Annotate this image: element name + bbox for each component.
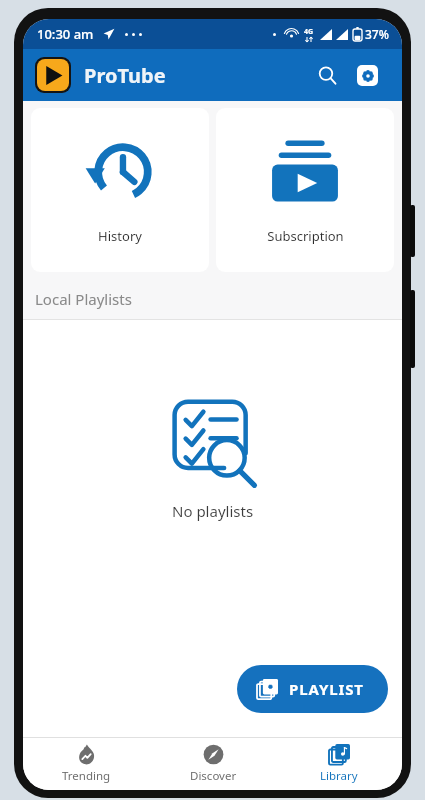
staticText: Discover: [190, 768, 237, 784]
button[interactable]: Library: [276, 738, 402, 790]
staticText: 4G: [304, 27, 314, 37]
staticText: No playlists: [172, 501, 254, 521]
button[interactable]: Search: [308, 56, 346, 94]
staticText: 37%: [365, 26, 389, 42]
staticText: History: [98, 227, 142, 245]
button[interactable]: Discover: [150, 738, 276, 790]
staticText: PLAYLIST: [289, 679, 364, 699]
staticText: 10:30 am: [37, 25, 94, 43]
button[interactable]: Subscription: [216, 108, 394, 272]
button[interactable]: Trending: [23, 738, 150, 790]
button[interactable]: Settings: [348, 56, 386, 94]
button[interactable]: PLAYLIST: [237, 665, 388, 713]
staticText: ProTube: [84, 62, 166, 89]
staticText: Subscription: [267, 227, 344, 245]
staticText: Trending: [62, 768, 111, 784]
staticText: Local Playlists: [35, 289, 132, 309]
staticText: Library: [320, 768, 358, 784]
button[interactable]: History: [31, 108, 209, 272]
